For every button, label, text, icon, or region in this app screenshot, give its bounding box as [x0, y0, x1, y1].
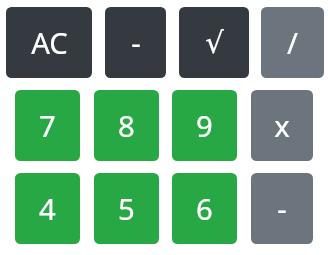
- staticText: x: [274, 106, 290, 146]
- staticText: -: [277, 189, 287, 229]
- staticText: /: [287, 23, 298, 63]
- staticText: 5: [118, 189, 135, 229]
- button[interactable]: Eight: [94, 90, 159, 161]
- button[interactable]: Minus: [105, 7, 166, 78]
- staticText: 4: [39, 189, 56, 229]
- staticText: √: [205, 26, 224, 60]
- button[interactable]: All clear: [6, 7, 92, 78]
- staticText: 7: [39, 106, 56, 146]
- button[interactable]: Seven: [15, 90, 80, 161]
- button[interactable]: Nine: [172, 90, 237, 161]
- staticText: 9: [196, 106, 213, 146]
- staticText: -: [131, 23, 141, 63]
- staticText: AC: [31, 23, 68, 63]
- button[interactable]: Multiply: [251, 90, 313, 161]
- staticText: 6: [196, 189, 213, 229]
- button[interactable]: Divide: [261, 7, 324, 78]
- button[interactable]: Five: [94, 173, 159, 244]
- button[interactable]: Four: [15, 173, 80, 244]
- button[interactable]: Six: [172, 173, 237, 244]
- button[interactable]: Square root: [179, 7, 249, 78]
- staticText: 8: [118, 106, 135, 146]
- button[interactable]: Minus: [251, 173, 313, 244]
